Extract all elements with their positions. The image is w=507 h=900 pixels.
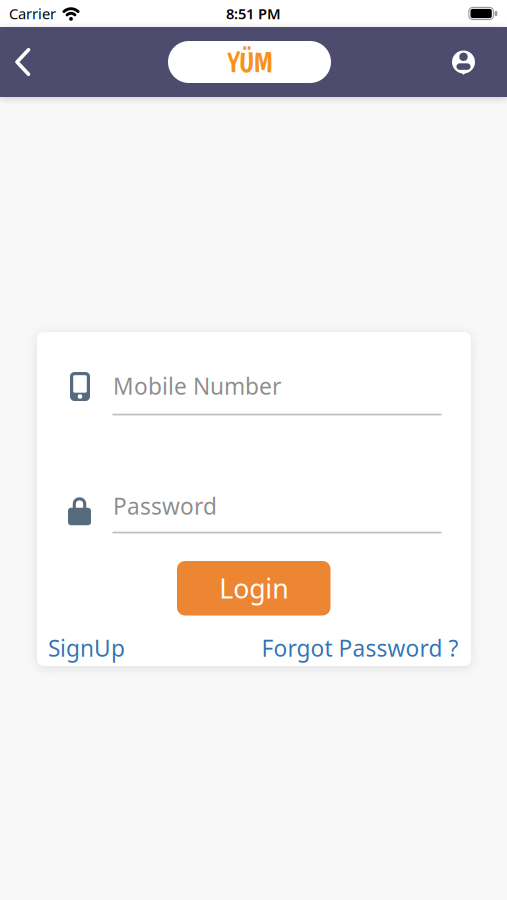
button[interactable]: SignUp	[48, 633, 125, 663]
staticText: Carrier	[9, 4, 56, 23]
staticText: YÜM	[227, 45, 272, 79]
staticText: Mobile Number	[113, 371, 281, 401]
button[interactable]: YUM Home	[172, 41, 335, 83]
button[interactable]: Forgot Password ?	[261, 633, 458, 663]
button[interactable]: Login	[177, 561, 330, 615]
staticText: 8:51 PM	[226, 4, 281, 23]
staticText: SignUp	[48, 633, 125, 663]
staticText: Login	[219, 570, 288, 606]
button[interactable]: Account	[442, 40, 507, 83]
button[interactable]: Back	[0, 40, 38, 84]
staticText: Forgot Password ?	[261, 633, 458, 663]
staticText: Password	[113, 491, 217, 521]
